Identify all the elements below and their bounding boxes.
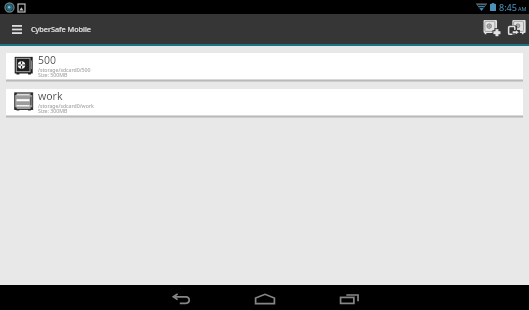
button[interactable]: Open safe bbox=[504, 14, 529, 44]
staticText: 500 bbox=[38, 53, 57, 67]
staticText: Size: 500MB bbox=[38, 71, 68, 78]
staticText: /storage/sdcard0/500 bbox=[38, 66, 91, 73]
button[interactable]: work bbox=[6, 89, 523, 115]
button[interactable]: Menu bbox=[0, 14, 33, 44]
staticText: /storage/sdcard0/work bbox=[38, 102, 94, 109]
button[interactable]: Home bbox=[233, 285, 296, 310]
staticText: work bbox=[38, 89, 63, 103]
staticText: 8:45 bbox=[499, 1, 517, 13]
button[interactable]: Back bbox=[149, 285, 212, 310]
staticText: AM bbox=[518, 5, 527, 12]
button[interactable]: 500 bbox=[6, 53, 523, 79]
staticText: CyberSafe Mobile bbox=[31, 24, 91, 34]
button[interactable]: Create safe bbox=[479, 14, 504, 44]
button[interactable]: Recents bbox=[317, 285, 380, 310]
staticText: Size: 300MB bbox=[38, 107, 68, 114]
